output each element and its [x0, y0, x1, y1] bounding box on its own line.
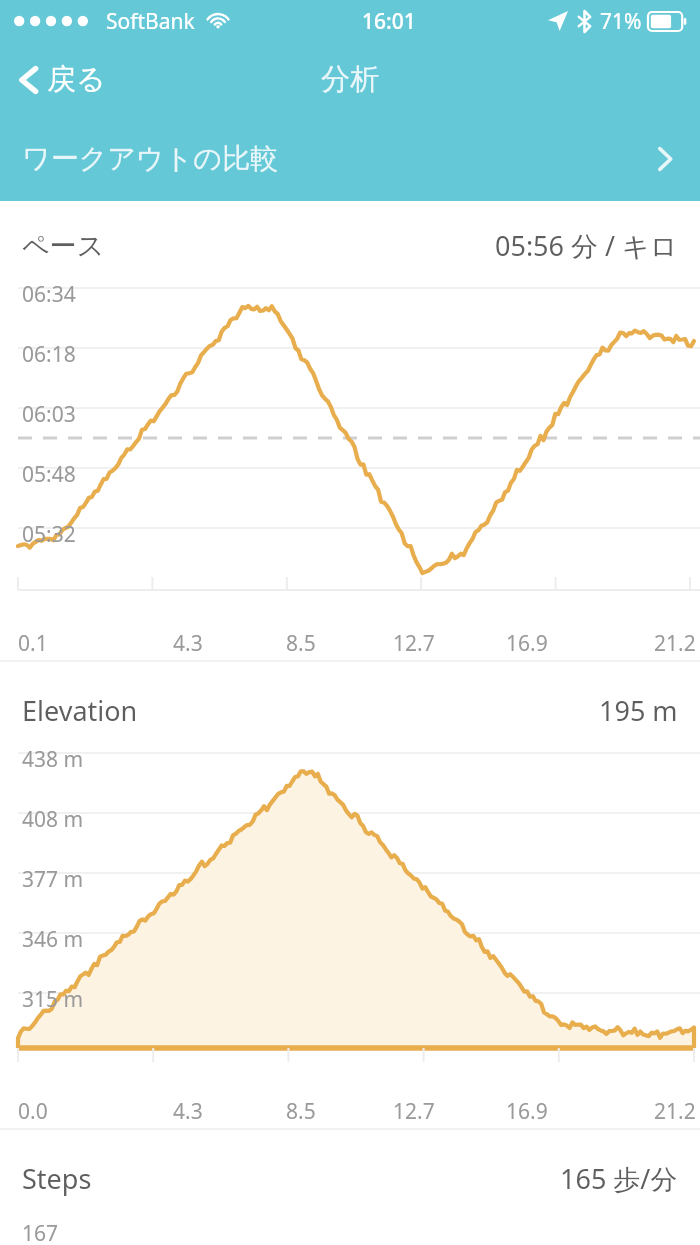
- button[interactable]: 戻る: [14, 61, 106, 98]
- staticText: 4.3: [173, 1097, 203, 1126]
- staticText: 71%: [600, 7, 642, 36]
- staticText: 16.9: [506, 1097, 548, 1126]
- staticText: 0.0: [18, 1097, 48, 1126]
- staticText: 408 m: [22, 805, 84, 834]
- staticText: 4.3: [173, 629, 203, 658]
- staticText: 05:56 分 / キロ: [495, 227, 678, 264]
- staticText: 分析: [321, 61, 379, 98]
- staticText: 06:34: [22, 280, 76, 309]
- staticText: 16.9: [506, 629, 548, 658]
- staticText: 315 m: [22, 985, 84, 1014]
- staticText: 12.7: [393, 629, 435, 658]
- staticText: 0.1: [18, 629, 48, 658]
- staticText: ワークアウトの比較: [22, 141, 278, 176]
- staticText: Elevation: [22, 692, 138, 729]
- staticText: 12.7: [393, 1097, 435, 1126]
- staticText: 8.5: [286, 629, 316, 658]
- staticText: 21.2: [654, 1097, 696, 1126]
- other: Wi-Fi: [205, 8, 231, 34]
- staticText: Steps: [22, 1160, 92, 1197]
- staticText: 06:18: [22, 340, 76, 369]
- other: Bluetooth: [577, 11, 592, 32]
- other: Location: [548, 11, 568, 31]
- staticText: 05:48: [22, 460, 76, 489]
- staticText: 167: [22, 1219, 59, 1245]
- button[interactable]: ワークアウトの比較: [0, 116, 700, 201]
- staticText: 16:01: [362, 7, 416, 36]
- staticText: 377 m: [22, 865, 84, 894]
- staticText: SoftBank: [106, 7, 195, 36]
- staticText: 195 m: [599, 692, 678, 729]
- staticText: 05:32: [22, 520, 76, 549]
- staticText: 21.2: [654, 629, 696, 658]
- staticText: 165 歩/分: [560, 1160, 678, 1197]
- staticText: 438 m: [22, 745, 84, 774]
- other: Battery: [648, 12, 686, 31]
- staticText: 346 m: [22, 925, 84, 954]
- staticText: 戻る: [47, 61, 106, 98]
- staticText: ペース: [22, 229, 105, 263]
- staticText: 06:03: [22, 400, 76, 429]
- staticText: 8.5: [286, 1097, 316, 1126]
